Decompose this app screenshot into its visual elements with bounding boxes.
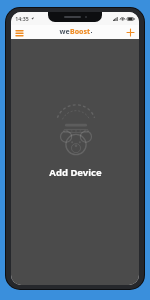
button[interactable]: Add device xyxy=(125,27,136,38)
button[interactable]: Add Device xyxy=(43,164,108,181)
staticText: Add Device xyxy=(49,166,102,179)
button[interactable]: Menu xyxy=(14,27,25,38)
staticText: we xyxy=(59,27,70,37)
staticText: Boost xyxy=(70,27,90,37)
staticText: 14:35 xyxy=(15,15,29,22)
